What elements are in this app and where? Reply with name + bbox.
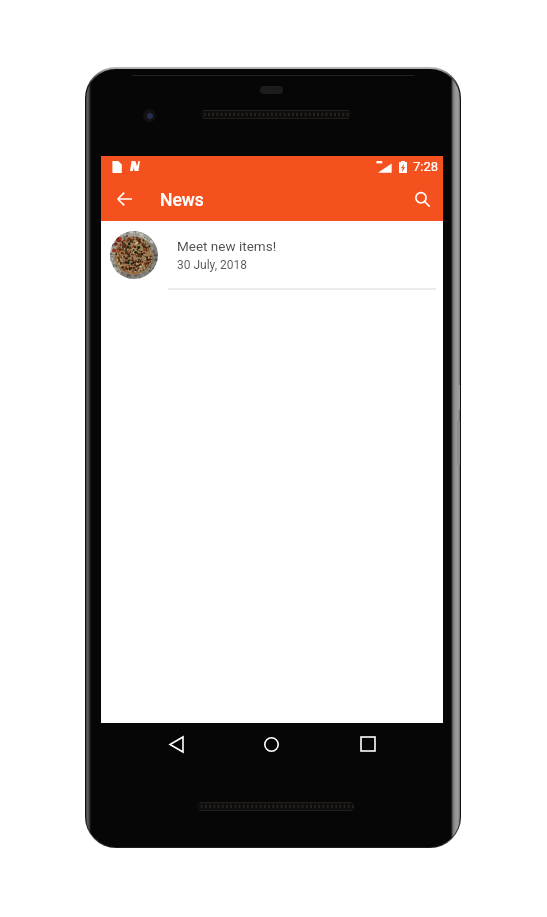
staticText: 7:28 [413, 159, 439, 174]
staticText: News [160, 190, 204, 211]
staticText: 30 July, 2018 [177, 258, 247, 272]
button[interactable]: Home [253, 726, 289, 762]
button[interactable]: Recent apps [350, 726, 386, 762]
button[interactable]: Search [404, 181, 440, 217]
staticText: Meet new items! [177, 238, 277, 254]
button[interactable]: Navigate up [106, 181, 142, 217]
button[interactable]: Meet new items! [101, 221, 443, 291]
button[interactable]: Back [158, 726, 194, 762]
